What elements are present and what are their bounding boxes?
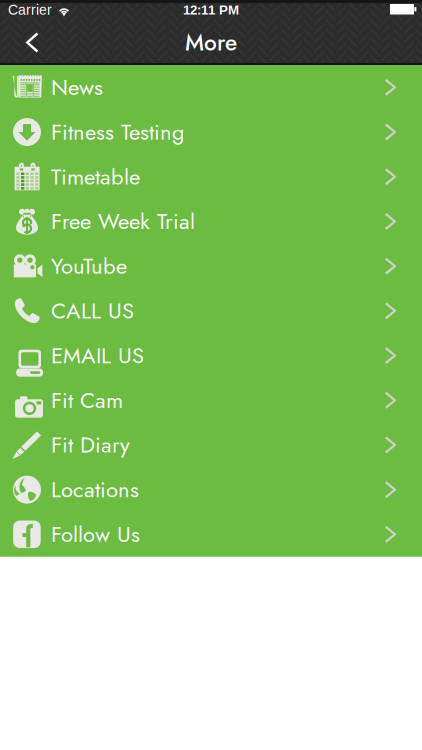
button[interactable]: Fitness Testing xyxy=(0,110,422,154)
button[interactable]: Fit Cam xyxy=(0,378,422,423)
button[interactable]: Free Week Trial xyxy=(0,199,422,244)
button[interactable]: Fit Diary xyxy=(0,423,422,467)
button[interactable]: Back xyxy=(0,20,53,64)
staticText: Follow Us xyxy=(51,518,140,550)
staticText: Fit Cam xyxy=(51,384,123,416)
staticText: 12:11 PM xyxy=(183,3,239,17)
staticText: YouTube xyxy=(51,250,127,282)
staticText: Timetable xyxy=(51,161,140,193)
staticText: Carrier xyxy=(8,2,52,18)
button[interactable]: Follow Us xyxy=(0,512,422,557)
staticText: CALL US xyxy=(51,295,134,327)
staticText: Fit Diary xyxy=(51,429,130,461)
staticText: Fitness Testing xyxy=(51,116,185,148)
staticText: More xyxy=(185,26,237,59)
button[interactable]: CALL US xyxy=(0,288,422,333)
button[interactable]: EMAIL US xyxy=(0,333,422,378)
button[interactable]: Timetable xyxy=(0,154,422,199)
staticText: EMAIL US xyxy=(51,340,144,371)
staticText: Locations xyxy=(51,474,139,506)
staticText: News xyxy=(51,71,103,103)
button[interactable]: YouTube xyxy=(0,244,422,288)
staticText: Free Week Trial xyxy=(51,206,195,237)
button[interactable]: News xyxy=(0,65,422,110)
button[interactable]: Locations xyxy=(0,467,422,512)
